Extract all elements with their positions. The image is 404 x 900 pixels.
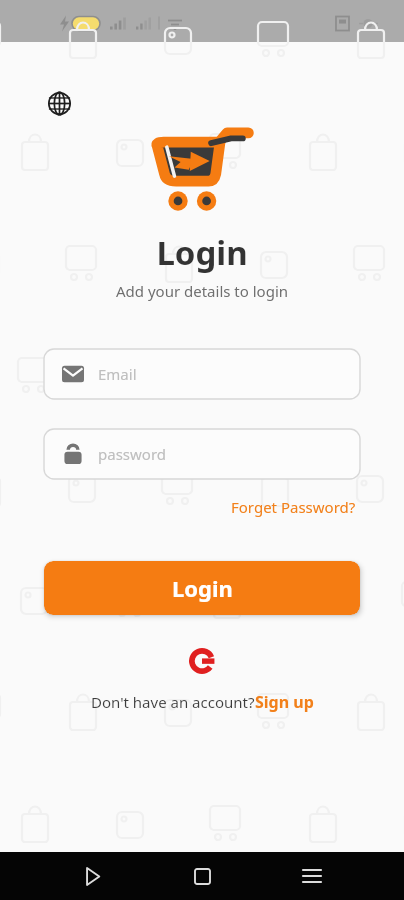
button[interactable]: Sign in with Google xyxy=(182,641,222,681)
button[interactable]: Change language xyxy=(44,88,74,118)
button[interactable]: Forget Password? xyxy=(227,493,360,521)
button[interactable]: Login xyxy=(44,561,360,615)
button[interactable]: Recent apps xyxy=(290,854,334,898)
button[interactable]: Home xyxy=(180,854,224,898)
button[interactable]: Back xyxy=(70,854,114,898)
button[interactable]: Sign up xyxy=(255,691,314,713)
button[interactable]: password xyxy=(44,429,360,479)
staticText: password xyxy=(98,444,166,464)
staticText: Add your details to login xyxy=(0,281,404,301)
staticText: Don't have an account? xyxy=(91,692,255,712)
button[interactable]: Email xyxy=(44,349,360,399)
staticText: Email xyxy=(98,364,137,384)
staticText: Forget Password? xyxy=(231,497,356,517)
staticText: Login xyxy=(172,573,233,603)
staticText: Sign up xyxy=(255,691,314,713)
staticText: Login xyxy=(0,230,404,275)
